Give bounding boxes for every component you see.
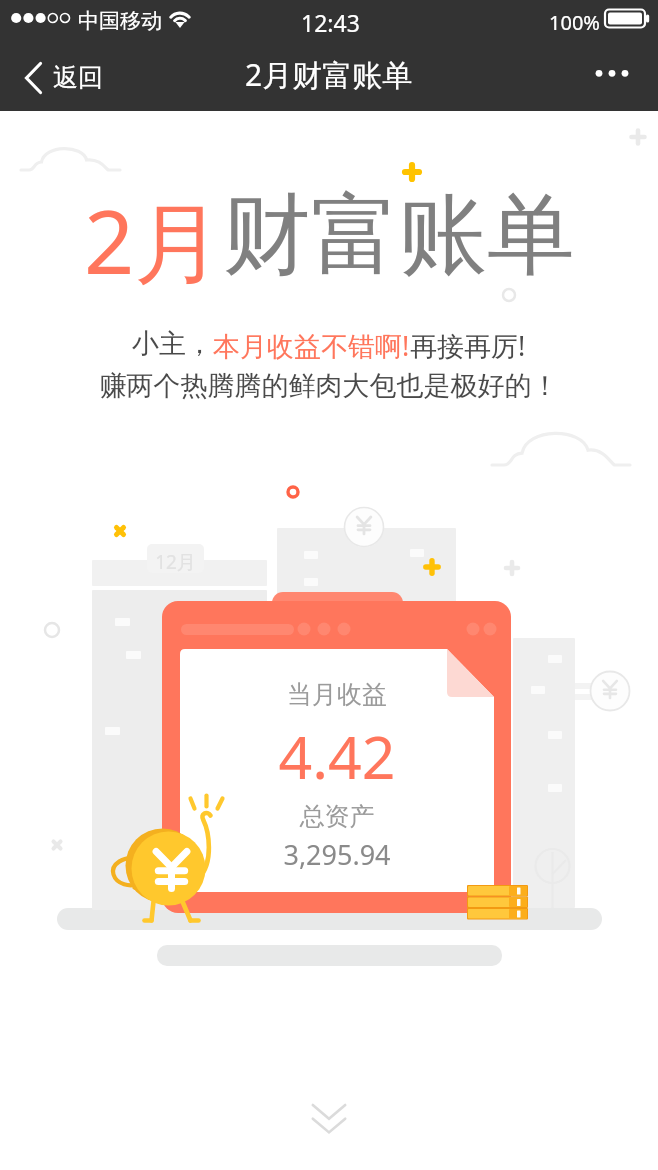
staticText: 中国移动 <box>78 8 162 34</box>
staticText: 总资产 <box>180 801 494 832</box>
staticText: 当月收益 <box>180 679 494 710</box>
button[interactable]: More options <box>582 44 658 111</box>
staticText: 100% <box>549 9 600 36</box>
button[interactable]: 返回 <box>0 44 119 111</box>
staticText: 2月 <box>84 180 223 300</box>
button[interactable]: Scroll down for more <box>299 1095 359 1145</box>
staticText: 再接再厉! <box>410 327 526 364</box>
staticText: 4.42 <box>180 716 494 796</box>
staticText: 2月财富账单 <box>245 54 413 95</box>
staticText: 财富账单 <box>223 180 575 291</box>
staticText: 本月收益不错啊! <box>213 327 410 364</box>
staticText: 3,295.94 <box>180 836 494 873</box>
staticText: 12:43 <box>301 7 360 38</box>
staticText: 12月 <box>147 549 204 575</box>
staticText: 返回 <box>53 62 103 93</box>
staticText: 赚两个热腾腾的鲜肉大包也是极好的！ <box>0 369 658 403</box>
staticText: 小主， <box>132 327 213 361</box>
